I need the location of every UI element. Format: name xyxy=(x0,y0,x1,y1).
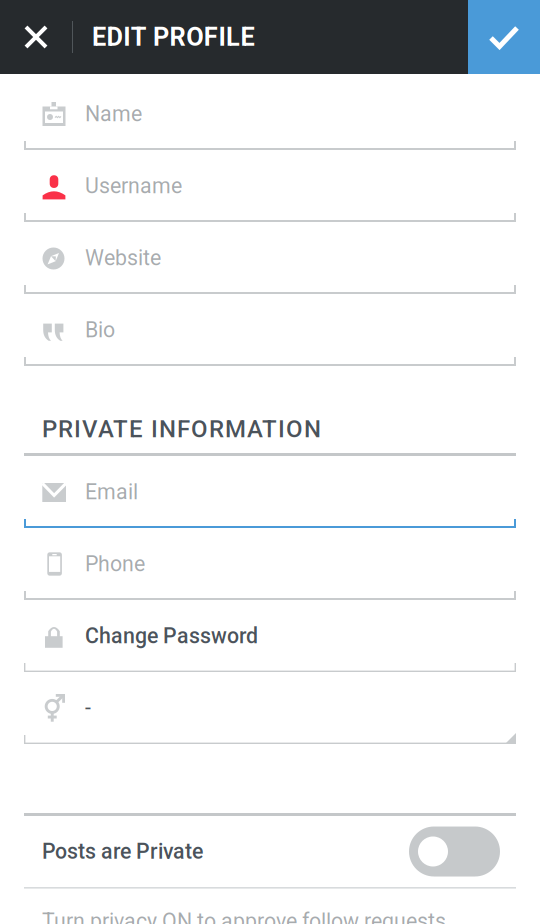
button[interactable]: Save xyxy=(468,0,540,74)
button[interactable]: Phone xyxy=(0,528,540,600)
button[interactable]: Bio xyxy=(0,294,540,366)
staticText: Phone xyxy=(85,551,145,576)
staticText: Change Password xyxy=(85,623,258,648)
staticText: PRIVATE INFORMATION xyxy=(42,415,321,443)
button[interactable]: - xyxy=(0,672,540,744)
button[interactable]: Close xyxy=(0,0,72,74)
button[interactable]: Email xyxy=(0,456,540,528)
button[interactable]: Change Password xyxy=(0,600,540,672)
staticText: EDIT PROFILE xyxy=(92,22,255,52)
staticText: Username xyxy=(85,173,182,198)
button[interactable]: Name xyxy=(0,78,540,150)
staticText: Posts are Private xyxy=(42,839,203,864)
staticText: Turn privacy ON to approve follow reques… xyxy=(42,909,446,924)
staticText: Website xyxy=(85,245,161,270)
button[interactable]: Username xyxy=(0,150,540,222)
button[interactable]: Website xyxy=(0,222,540,294)
staticText: Email xyxy=(85,479,138,504)
staticText: Name xyxy=(85,101,142,126)
button[interactable]: Posts are Private xyxy=(0,816,540,887)
staticText: - xyxy=(85,695,91,720)
staticText: Bio xyxy=(85,317,115,342)
